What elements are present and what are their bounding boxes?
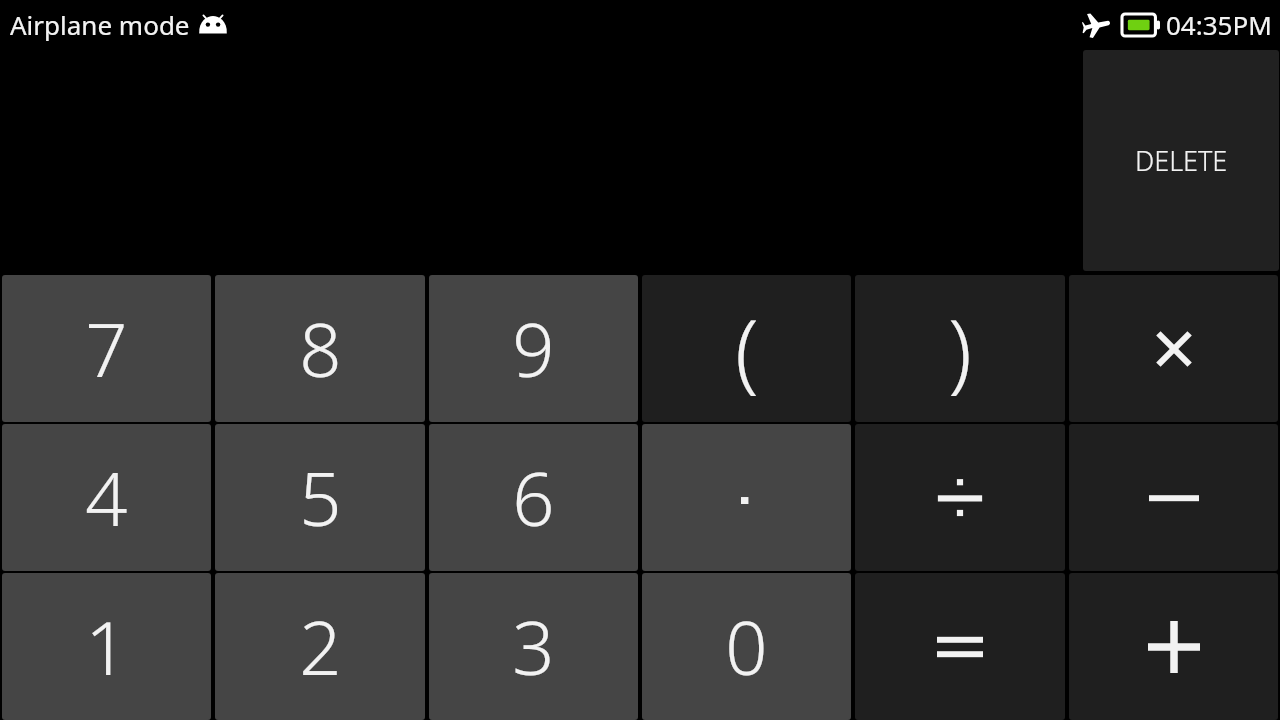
staticText: 7 xyxy=(85,298,128,399)
button[interactable]: 5 xyxy=(215,424,425,571)
staticText: 9 xyxy=(512,298,555,399)
staticText: ) xyxy=(948,290,972,407)
staticText: 5 xyxy=(299,447,342,548)
button[interactable]: Plus xyxy=(1069,573,1278,720)
staticText: 8 xyxy=(299,298,342,399)
button[interactable]: 8 xyxy=(215,275,425,422)
button[interactable]: 1 xyxy=(2,573,211,720)
staticText: DELETE xyxy=(1135,142,1228,179)
button[interactable]: 4 xyxy=(2,424,211,571)
button[interactable]: DELETE xyxy=(1083,50,1279,271)
button[interactable]: 9 xyxy=(429,275,638,422)
button[interactable]: Minus xyxy=(1069,424,1278,571)
staticText: 6 xyxy=(512,447,555,548)
button[interactable]: Open parenthesis xyxy=(642,275,851,422)
button[interactable]: Multiply xyxy=(1069,275,1278,422)
staticText: Airplane mode xyxy=(10,7,190,42)
button[interactable]: 7 xyxy=(2,275,211,422)
staticText: 1 xyxy=(85,596,128,697)
staticText: 2 xyxy=(299,596,342,697)
button[interactable]: Decimal point xyxy=(642,424,851,571)
staticText: ( xyxy=(735,290,759,407)
staticText: 04:35PM xyxy=(1166,7,1272,42)
button[interactable]: Close parenthesis xyxy=(855,275,1065,422)
staticText: 4 xyxy=(85,447,128,548)
staticText: 0 xyxy=(725,596,768,697)
staticText: 3 xyxy=(512,596,555,697)
button[interactable]: 2 xyxy=(215,573,425,720)
button[interactable]: Divide xyxy=(855,424,1065,571)
button[interactable]: 3 xyxy=(429,573,638,720)
button[interactable]: 0 xyxy=(642,573,851,720)
button[interactable]: Equals xyxy=(855,573,1065,720)
button[interactable]: 6 xyxy=(429,424,638,571)
